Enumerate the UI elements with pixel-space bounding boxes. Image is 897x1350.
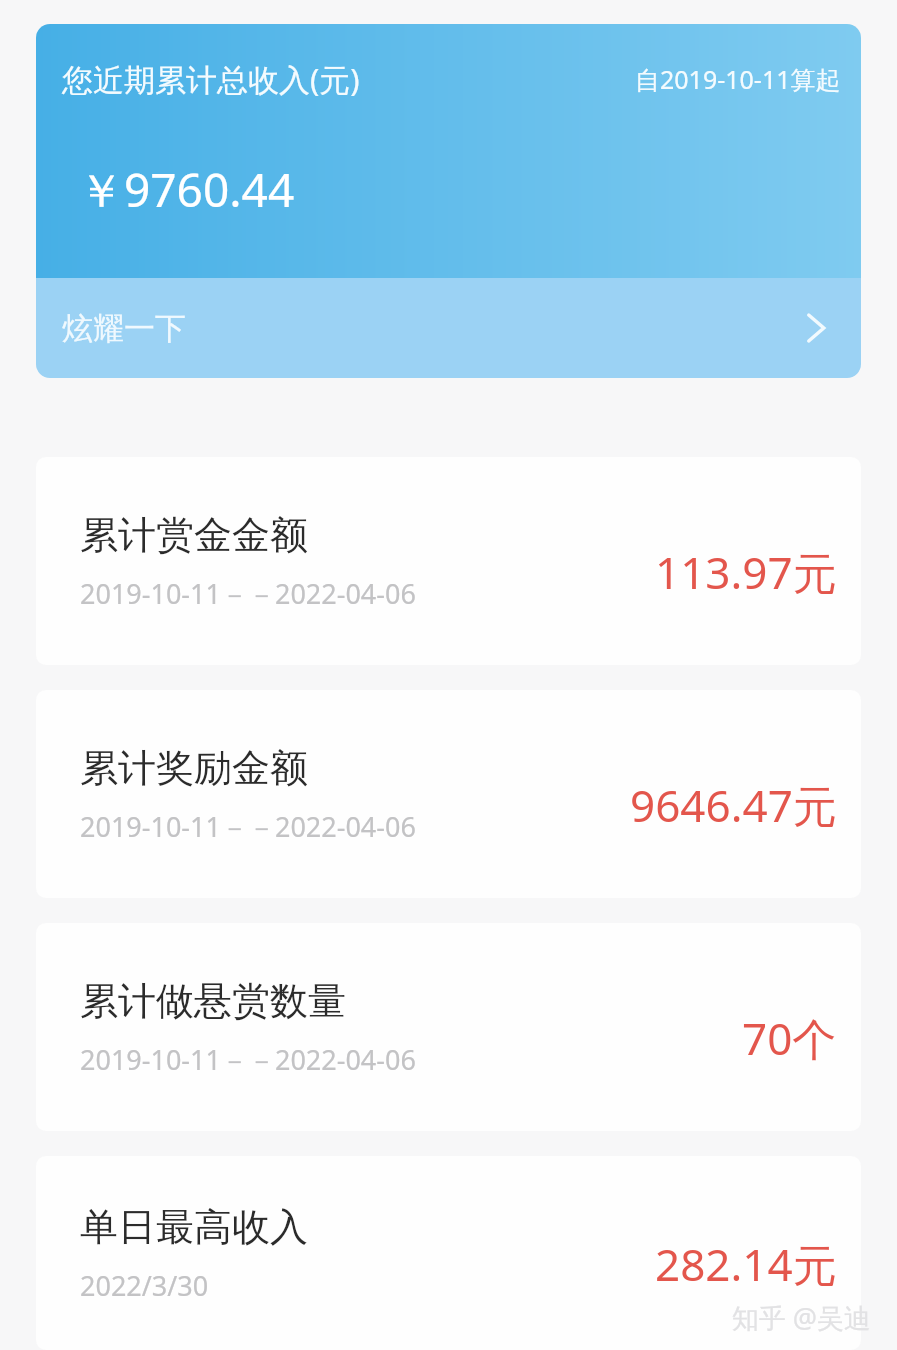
button[interactable]: 累计赏金金额 [36, 457, 861, 665]
staticText: 自2019-10-11算起 [635, 62, 841, 96]
staticText: 9646.47元 [630, 775, 837, 835]
staticText: 炫耀一下 [62, 309, 186, 348]
staticText: 2019-10-11－－2022-04-06 [80, 808, 416, 845]
staticText: 70个 [742, 1008, 837, 1068]
button[interactable]: 炫耀一下 [36, 278, 861, 378]
staticText: 282.14元 [655, 1234, 837, 1294]
staticText: 2019-10-11－－2022-04-06 [80, 1041, 416, 1078]
staticText: ￥9760.44 [78, 158, 295, 221]
button[interactable]: 累计奖励金额 [36, 690, 861, 898]
staticText: 累计奖励金额 [80, 744, 308, 792]
staticText: 113.97元 [655, 542, 837, 602]
staticText: 累计做悬赏数量 [80, 977, 346, 1025]
button[interactable]: 累计做悬赏数量 [36, 923, 861, 1131]
staticText: 单日最高收入 [80, 1203, 308, 1251]
staticText: 累计赏金金额 [80, 511, 308, 559]
staticText: 2022/3/30 [80, 1267, 209, 1304]
staticText: 2019-10-11－－2022-04-06 [80, 575, 416, 612]
button[interactable]: 单日最高收入 [36, 1156, 861, 1350]
staticText: 您近期累计总收入(元) [62, 58, 360, 100]
staticText: 知乎 @吴迪 [731, 1299, 871, 1336]
